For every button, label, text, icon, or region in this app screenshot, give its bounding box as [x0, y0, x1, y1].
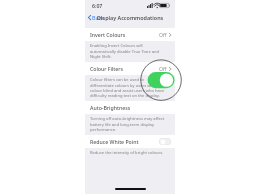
- staticText: Turning off auto-brightness may affect b…: [90, 116, 168, 132]
- staticText: Off: [159, 31, 167, 38]
- staticText: Reduce the intensity of bright colours.: [90, 150, 164, 156]
- button[interactable]: Colour Filters: [85, 62, 175, 75]
- staticText: Back: [92, 14, 104, 21]
- staticText: Enabling Invert Colours will automatical…: [90, 43, 168, 59]
- staticText: Colour Filters: [90, 65, 124, 72]
- button[interactable]: Invert Colours: [85, 28, 175, 41]
- staticText: Off: [159, 65, 167, 72]
- button[interactable]: Back: [85, 12, 107, 23]
- staticText: Invert Colours: [90, 31, 126, 38]
- staticText: 6:07: [92, 2, 103, 9]
- staticText: Display Accommodations: [97, 14, 164, 21]
- staticText: Auto-Brightness: [90, 104, 131, 111]
- button[interactable]: Auto-Brightness toggle, on: [147, 71, 174, 84]
- button[interactable]: Reduce White Point toggle, off: [159, 138, 171, 145]
- staticText: Reduce White Point: [90, 138, 139, 145]
- staticText: Colour filters can be used to differenti…: [90, 77, 168, 98]
